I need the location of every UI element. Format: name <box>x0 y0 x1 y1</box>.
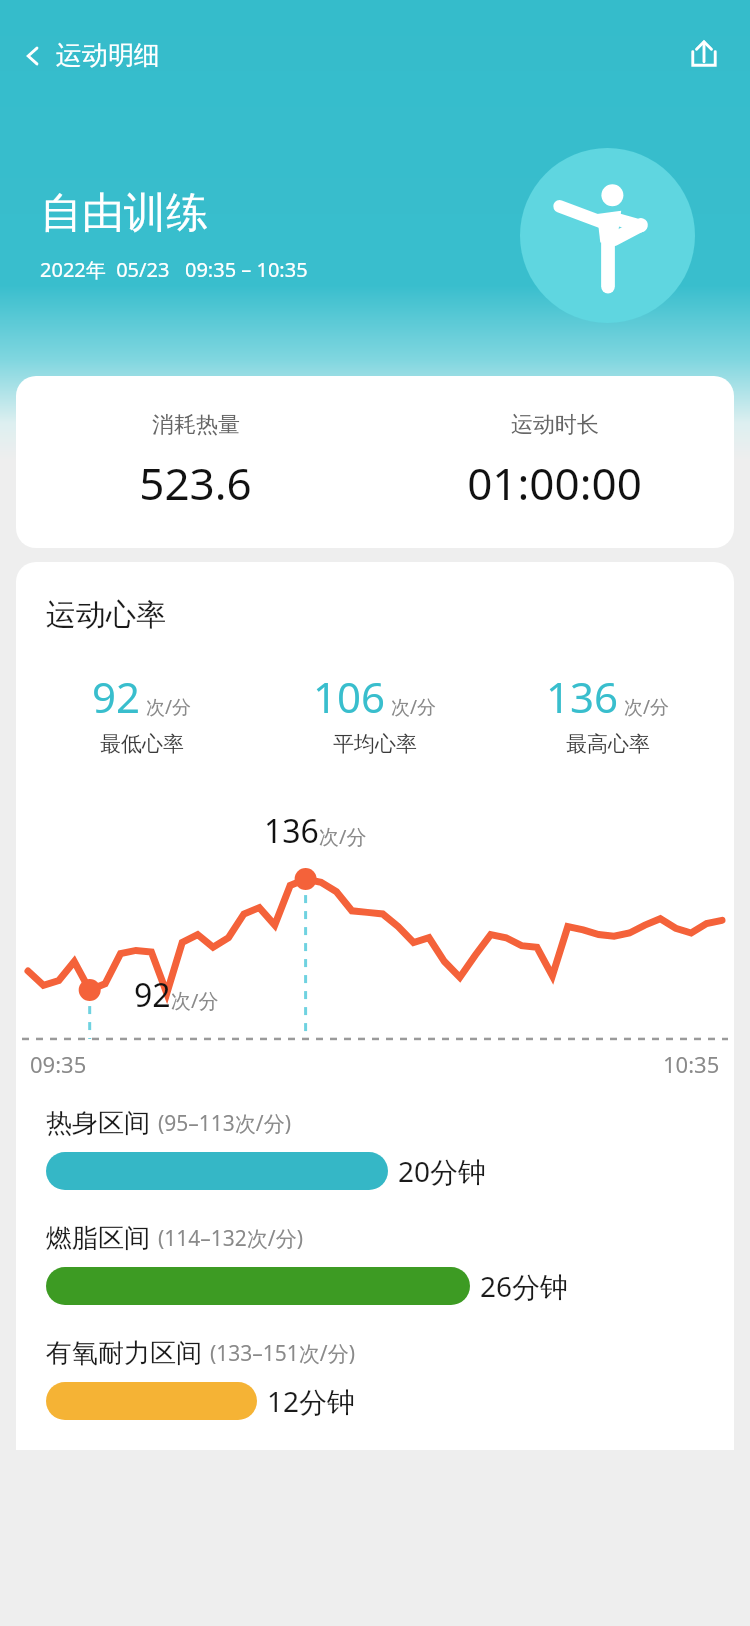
staticText: 最高心率 <box>566 731 650 757</box>
staticText: 12分钟 <box>267 1382 356 1420</box>
staticText: 2022年 05/23 09:35 – 10:35 <box>40 256 308 283</box>
staticText: 26分钟 <box>480 1267 569 1305</box>
staticText: 运动明细 <box>56 39 160 72</box>
button[interactable]: 热身区间 <box>16 1107 734 1190</box>
staticText: 523.6 <box>139 453 252 513</box>
staticText: 热身区间 <box>46 1107 150 1140</box>
staticText: 自由训练 <box>40 187 208 240</box>
staticText: 平均心率 <box>333 731 417 757</box>
staticText: 次/分 <box>146 694 192 720</box>
staticText: 20分钟 <box>398 1152 487 1190</box>
staticText: 燃脂区间 <box>46 1222 150 1255</box>
staticText: 09:35 <box>30 1049 87 1079</box>
staticText: 92 <box>92 668 141 725</box>
button[interactable]: Share <box>680 31 728 79</box>
staticText: 次/分 <box>171 987 219 1014</box>
staticText: 次/分 <box>391 694 437 720</box>
staticText: (114–132次/分) <box>158 1224 303 1253</box>
staticText: 106 <box>313 668 386 725</box>
staticText: 01:00:00 <box>467 453 642 513</box>
staticText: 消耗热量 <box>152 411 240 439</box>
staticText: 136 <box>264 809 319 853</box>
staticText: 次/分 <box>319 823 367 850</box>
staticText: 136 <box>546 668 619 725</box>
button[interactable]: 燃脂区间 <box>16 1222 734 1305</box>
button[interactable]: 运动明细 <box>12 33 170 78</box>
staticText: 运动心率 <box>46 596 166 634</box>
staticText: 运动时长 <box>511 411 599 439</box>
staticText: (95–113次/分) <box>158 1109 291 1138</box>
staticText: 92 <box>134 973 171 1017</box>
staticText: 最低心率 <box>100 731 184 757</box>
staticText: 10:35 <box>663 1049 720 1079</box>
button[interactable]: 有氧耐力区间 <box>16 1337 734 1420</box>
button[interactable]: 消耗热量 <box>16 376 734 548</box>
staticText: 次/分 <box>624 694 670 720</box>
staticText: 有氧耐力区间 <box>46 1337 202 1370</box>
staticText: (133–151次/分) <box>210 1339 355 1368</box>
